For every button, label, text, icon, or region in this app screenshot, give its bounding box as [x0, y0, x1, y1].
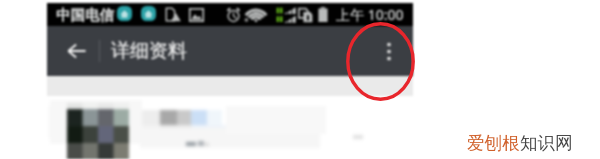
staticText: 详细资料 [111, 39, 187, 63]
staticText: 上午 10:00 [336, 5, 404, 24]
button[interactable]: Back [56, 26, 96, 76]
button[interactable]: More options [373, 26, 405, 76]
staticText: 知识网 [520, 132, 573, 154]
staticText: 爱刨根 [467, 132, 520, 154]
staticText: 中国电信 [56, 6, 114, 24]
